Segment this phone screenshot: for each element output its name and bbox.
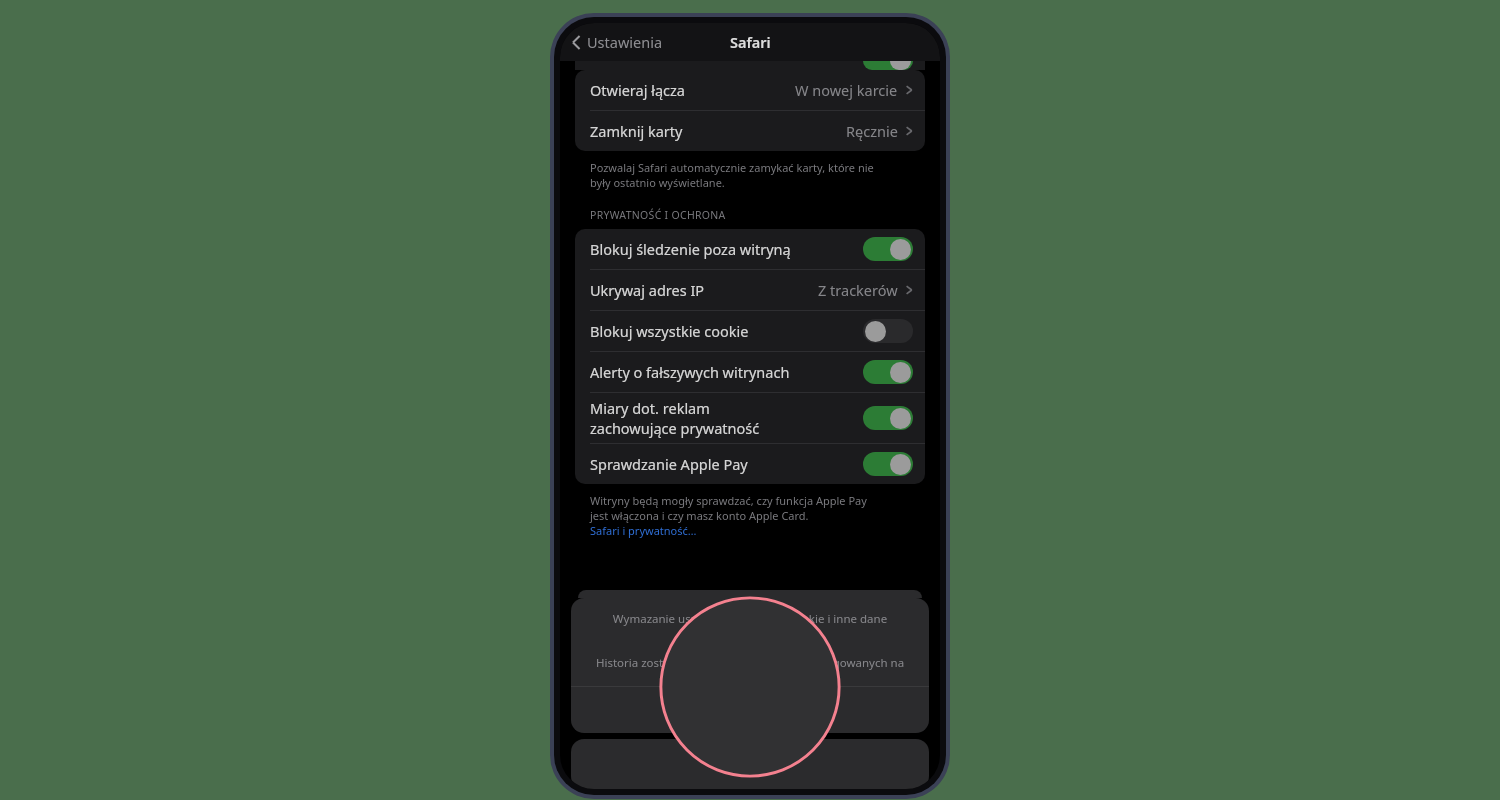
button[interactable]: Switch off (863, 319, 913, 343)
staticText: Ręcznie (846, 121, 898, 141)
button[interactable]: Zamknij karty (575, 111, 925, 151)
staticText: W nowej karcie (795, 80, 898, 100)
staticText: Safari i prywatność… (590, 523, 697, 538)
staticText: Safari (730, 32, 771, 52)
other: Back (571, 33, 582, 52)
button[interactable]: Switch on (863, 406, 913, 430)
staticText: Otwieraj łącza (590, 80, 686, 100)
staticText: Alerty o fałszywych witrynach (590, 362, 790, 382)
staticText: zachowujące prywatność (590, 418, 760, 438)
button[interactable]: Back (566, 27, 668, 57)
staticText: Wymaż historię i dane (667, 699, 833, 721)
button[interactable]: Alerty o fałszywych witrynach (575, 352, 925, 392)
staticText: Miary dot. reklam (590, 398, 710, 418)
button[interactable]: Otwieraj łącza (575, 70, 925, 110)
button[interactable]: Switch on (863, 360, 913, 384)
staticText: Zamknij karty (590, 121, 683, 141)
button[interactable] (571, 739, 929, 789)
staticText: Ustawienia (587, 32, 663, 52)
staticText: Z trackerów (818, 280, 898, 300)
staticText: Ukrywaj adres IP (590, 280, 705, 300)
button[interactable]: Blokuj wszystkie cookie (575, 311, 925, 351)
button[interactable]: Blokuj śledzenie poza witryną (575, 229, 925, 269)
button[interactable]: Switch on (863, 452, 913, 476)
button[interactable]: Miary dot. reklam (575, 393, 925, 443)
staticText: Blokuj wszystkie cookie (590, 321, 749, 341)
staticText: Wymazanie usunie historię, pliki cookie … (571, 611, 929, 644)
button[interactable]: Ukrywaj adres IP (575, 270, 925, 310)
button[interactable]: Safari i prywatność… (590, 523, 697, 538)
staticText: Blokuj śledzenie poza witryną (590, 239, 791, 259)
staticText: PRYWATNOŚĆ I OCHRONA (590, 208, 726, 222)
button[interactable]: Sprawdzanie Apple Pay (575, 444, 925, 484)
staticText: Sprawdzanie Apple Pay (590, 454, 748, 474)
staticText: Witryny będą mogły sprawdzać, czy funkcj… (590, 493, 867, 523)
staticText: Pozwalaj Safari automatycznie zamykać ka… (590, 160, 874, 190)
button[interactable]: Switch on (863, 237, 913, 261)
staticText: Historia zostanie wymazana z urządzeń za… (571, 655, 929, 671)
button[interactable]: Wymaż historię i dane (571, 687, 929, 733)
